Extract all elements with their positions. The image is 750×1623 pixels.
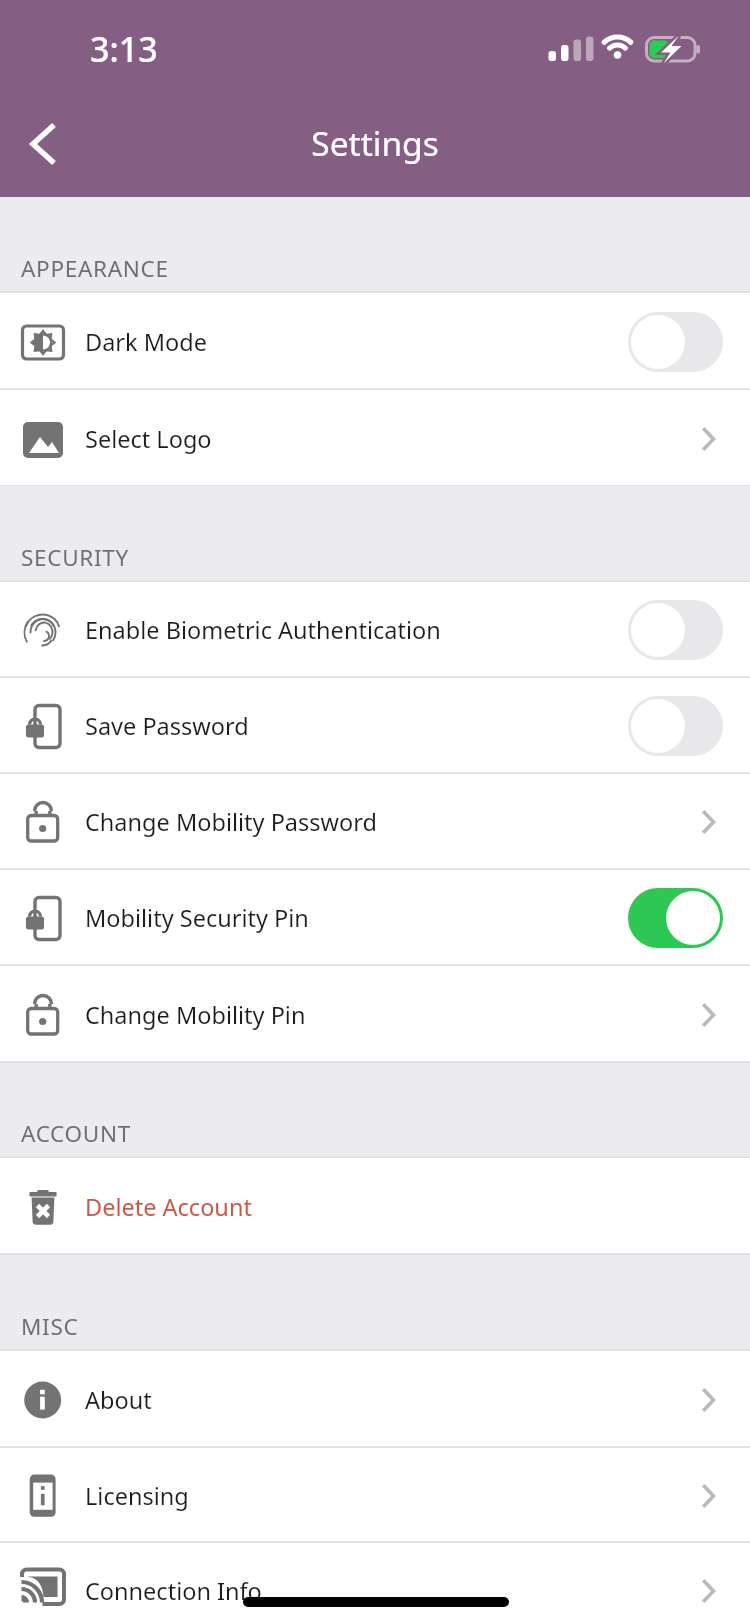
staticText: 3:13 [90, 26, 158, 72]
button[interactable]: About [0, 1351, 750, 1448]
staticText: About [85, 1384, 701, 1416]
button[interactable]: Switch off [628, 696, 723, 756]
staticText: Settings [0, 120, 750, 166]
button[interactable]: Select Logo [0, 390, 750, 487]
staticText: Delete Account [85, 1191, 721, 1223]
staticText: Licensing [85, 1480, 701, 1512]
button[interactable]: Dark Mode [0, 293, 750, 390]
button[interactable]: Mobility Security Pin [0, 870, 750, 966]
button[interactable]: Change Mobility Pin [0, 966, 750, 1063]
staticText: APPEARANCE [21, 253, 169, 284]
button[interactable]: Back [8, 108, 80, 180]
button[interactable]: Switch off [628, 600, 723, 660]
staticText: Connection Info [85, 1575, 701, 1607]
staticText: MISC [21, 1311, 79, 1342]
staticText: Dark Mode [85, 326, 626, 358]
staticText: Change Mobility Password [85, 806, 701, 838]
button[interactable]: Enable Biometric Authentication [0, 582, 750, 678]
button[interactable]: Delete Account [0, 1158, 750, 1255]
button[interactable]: Connection Info [0, 1543, 750, 1623]
button[interactable]: Change Mobility Password [0, 774, 750, 870]
staticText: SECURITY [21, 542, 129, 573]
button[interactable]: Save Password [0, 678, 750, 774]
button[interactable]: Licensing [0, 1448, 750, 1543]
staticText: Enable Biometric Authentication [85, 614, 626, 646]
button[interactable]: Switch off [628, 312, 723, 372]
button[interactable]: Switch on [628, 888, 723, 948]
staticText: ACCOUNT [21, 1118, 131, 1149]
staticText: Save Password [85, 710, 626, 742]
staticText: Mobility Security Pin [85, 902, 626, 934]
staticText: Select Logo [85, 423, 701, 455]
staticText: Change Mobility Pin [85, 999, 701, 1031]
